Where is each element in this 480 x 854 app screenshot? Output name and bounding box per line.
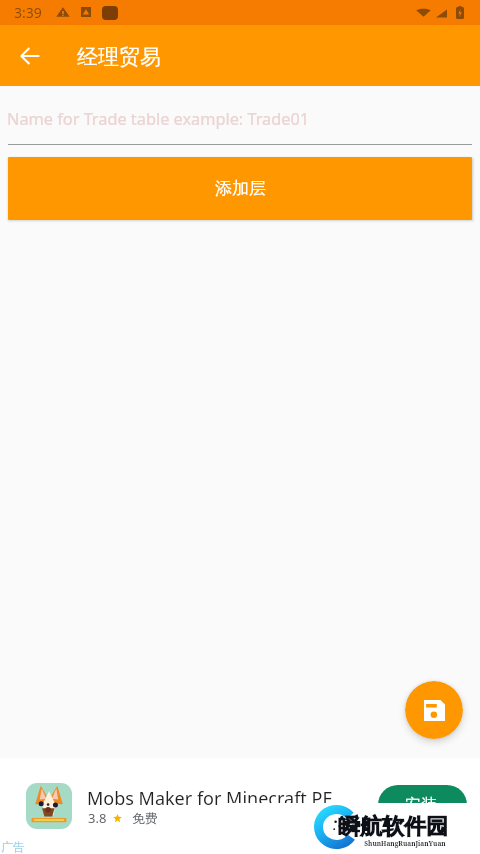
staticText: 3:39 [14,3,42,22]
staticText: 瞬航软件园 [338,813,448,841]
staticText: ShunHangRuanJianYuan [364,839,446,848]
staticText: 3.8 [88,809,107,827]
button[interactable]: Save [405,681,463,739]
staticText: 安装 [405,795,437,815]
button[interactable]: 添加层 [8,157,472,220]
staticText: 经理贸易 [77,44,161,70]
staticText: Mobs Maker for Minecraft PE [87,786,333,811]
button[interactable]: Back [9,35,51,77]
staticText: 广告 [1,839,25,854]
staticText: Name for Trade table example: Trade01 [7,108,310,130]
button[interactable]: 安装 [378,785,467,831]
staticText: 添加层 [215,178,266,199]
staticText: 免费 [132,810,158,826]
